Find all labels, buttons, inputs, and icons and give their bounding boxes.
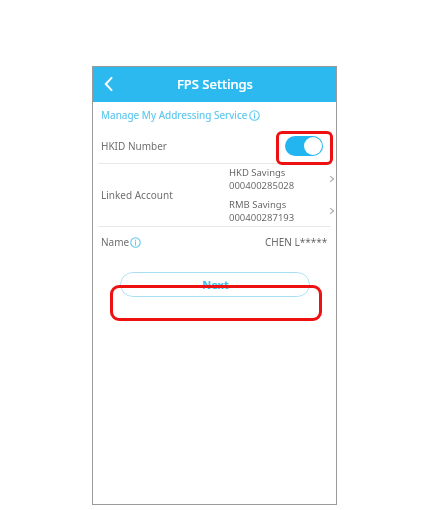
staticText: HKD Savings	[229, 166, 286, 179]
staticText: Next	[202, 277, 229, 292]
button[interactable]: Next	[120, 272, 310, 297]
button[interactable]: HKID Number toggle, on	[285, 136, 323, 156]
staticText: HKID Number	[101, 139, 167, 153]
button[interactable]: Manage My Addressing Service	[92, 102, 337, 128]
staticText: 000400285028	[229, 179, 295, 192]
button[interactable]: More information	[130, 237, 141, 248]
staticText: Linked Account	[101, 188, 229, 202]
staticText: Manage My Addressing Service	[101, 108, 248, 122]
staticText: RMB Savings	[229, 198, 287, 211]
other: Open HKD Savings	[327, 174, 337, 184]
button[interactable]: HKD Savings	[229, 166, 337, 192]
other: Open RMB Savings	[327, 206, 337, 216]
button[interactable]: Back	[92, 67, 126, 101]
staticText: 000400287193	[229, 211, 295, 224]
button[interactable]: More information	[249, 110, 260, 121]
staticText: FPS Settings	[177, 75, 253, 93]
staticText: Name	[101, 235, 130, 249]
staticText: CHEN L*****	[265, 235, 328, 249]
button[interactable]: RMB Savings	[229, 198, 337, 224]
